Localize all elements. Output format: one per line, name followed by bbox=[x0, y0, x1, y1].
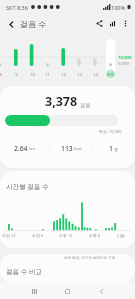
button[interactable]: Recents bbox=[26, 283, 42, 299]
staticText: 오전 12 bbox=[2, 233, 16, 238]
staticText: 시간별 걸음 수 bbox=[6, 182, 49, 191]
staticText: 다음 bbox=[117, 233, 125, 238]
staticText: 5,000 bbox=[118, 60, 129, 66]
staticText: kcal bbox=[74, 146, 82, 152]
staticText: 100% bbox=[111, 4, 126, 11]
button[interactable]: Statistics bbox=[106, 17, 119, 30]
staticText: 오후 6 bbox=[89, 233, 101, 238]
staticText: 1 bbox=[109, 144, 113, 153]
staticText: 14 bbox=[93, 71, 98, 77]
staticText: 3,378 bbox=[45, 93, 78, 110]
staticText: 걸음 bbox=[80, 102, 91, 109]
staticText: 8 bbox=[0, 71, 2, 77]
staticText: SKT 8:36 bbox=[6, 4, 28, 11]
staticText: 걸음 수 bbox=[20, 18, 47, 29]
staticText: 2.64 bbox=[14, 144, 28, 153]
button[interactable]: More options bbox=[119, 17, 132, 30]
button[interactable]: 시간별 걸음 수 bbox=[0, 171, 135, 248]
staticText: 층 bbox=[114, 147, 119, 152]
button[interactable]: Back bbox=[4, 17, 18, 31]
staticText: 전체 평균, 마지막 업데이트 지점 bbox=[64, 255, 116, 260]
staticText: 9/15 bbox=[107, 73, 114, 77]
staticText: 오전 6 bbox=[32, 233, 44, 238]
staticText: 12 bbox=[61, 71, 66, 77]
button[interactable]: Share bbox=[93, 17, 106, 30]
staticText: 목표: 10,000 bbox=[99, 129, 122, 134]
staticText: 오후 12 bbox=[59, 233, 73, 238]
staticText: 11 bbox=[45, 71, 50, 77]
staticText: 10,000 bbox=[118, 54, 132, 60]
staticText: km bbox=[29, 146, 36, 152]
button[interactable]: 3,378 bbox=[0, 86, 135, 168]
button[interactable]: Back bbox=[93, 283, 109, 299]
staticText: 113 bbox=[61, 144, 73, 153]
staticText: 10 bbox=[30, 71, 35, 77]
button[interactable]: 전체 평균, 마지막 업데이트 지점 bbox=[0, 254, 135, 283]
staticText: 걸음 수 비교 bbox=[6, 267, 42, 276]
button[interactable]: 9/15 bbox=[106, 70, 115, 79]
staticText: 9 bbox=[15, 71, 18, 77]
button[interactable]: Home bbox=[59, 283, 75, 299]
staticText: 13 bbox=[77, 71, 82, 77]
